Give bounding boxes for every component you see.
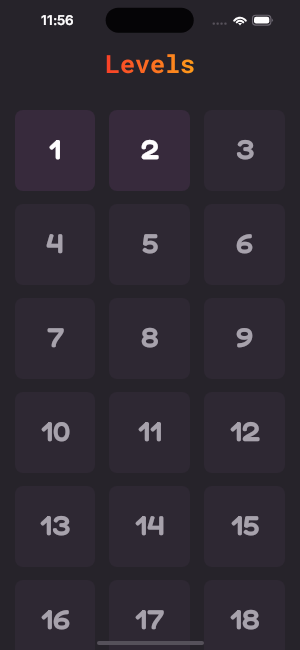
button[interactable] [15, 392, 95, 473]
button[interactable] [204, 486, 285, 567]
button[interactable] [15, 204, 95, 285]
button[interactable] [15, 298, 95, 379]
button[interactable] [109, 110, 190, 191]
button[interactable] [204, 580, 285, 650]
button[interactable] [109, 580, 190, 650]
button[interactable] [109, 298, 190, 379]
button[interactable] [109, 392, 190, 473]
button[interactable] [204, 110, 285, 191]
button[interactable] [109, 204, 190, 285]
button[interactable] [204, 298, 285, 379]
button[interactable] [15, 486, 95, 567]
button[interactable] [204, 204, 285, 285]
button[interactable] [204, 392, 285, 473]
button[interactable] [15, 580, 95, 650]
button[interactable] [15, 110, 95, 191]
button[interactable] [109, 486, 190, 567]
